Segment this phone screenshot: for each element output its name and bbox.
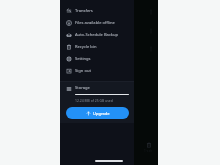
button[interactable]: Auto-Schedule Backup	[60, 29, 134, 41]
staticText: Recycle bin	[75, 44, 97, 50]
button[interactable]: Files available offline	[60, 17, 134, 29]
other: Files available offline	[66, 20, 72, 26]
other: Recycle bin	[146, 142, 152, 148]
staticText: 12.24 MB of 25 GB used	[75, 98, 113, 103]
staticText: Settings	[75, 56, 91, 62]
other: Recycle bin	[66, 44, 72, 50]
staticText: Transfers	[75, 8, 93, 14]
staticText: Auto-Schedule Backup	[75, 32, 119, 38]
button[interactable]: Sign out	[60, 65, 134, 77]
button[interactable]: Transfers	[60, 5, 134, 17]
staticText: Files available offline	[75, 20, 115, 26]
button[interactable]: Recycle bin	[60, 41, 134, 53]
other: Transfers	[66, 8, 72, 14]
button[interactable]: More options	[149, 46, 153, 52]
button[interactable]: Upgrade	[66, 107, 129, 119]
other: Settings	[66, 56, 72, 62]
staticText: Sign out	[75, 68, 91, 74]
staticText: Storage	[75, 85, 90, 91]
button[interactable]: More options	[149, 9, 153, 15]
button[interactable]: Recycle bin tab	[144, 142, 153, 153]
other: Storage	[66, 86, 72, 92]
button[interactable]: Settings	[60, 53, 134, 65]
other: Auto-Schedule Backup	[66, 32, 72, 38]
staticText: Trash	[144, 149, 153, 153]
other: Sign out	[66, 68, 72, 74]
staticText: Upgrade	[93, 111, 110, 116]
button[interactable]: More options	[149, 28, 153, 34]
